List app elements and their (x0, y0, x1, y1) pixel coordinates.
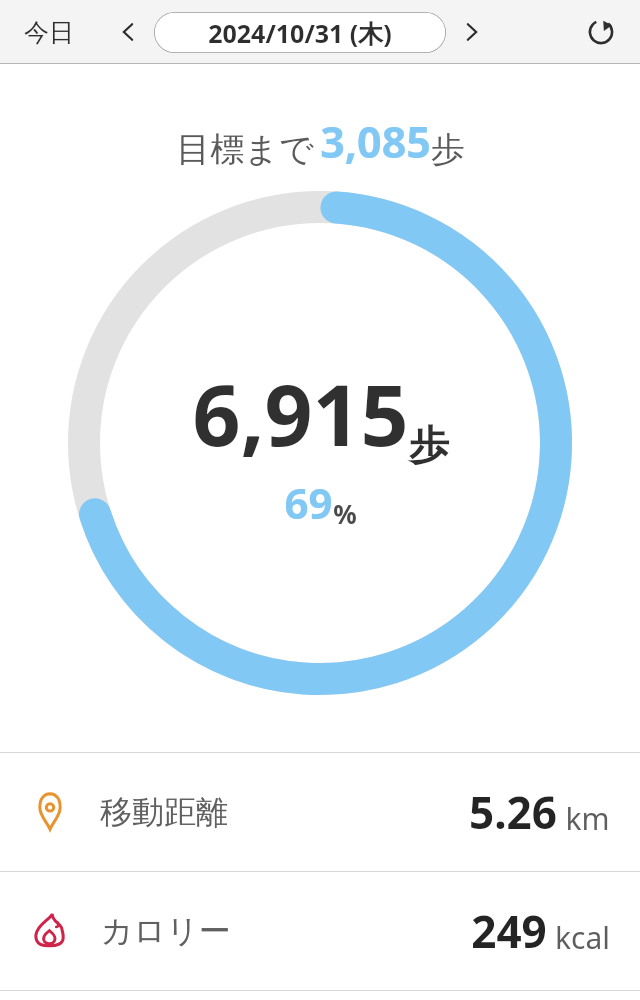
button[interactable]: Next day (450, 10, 494, 54)
staticText: 目標まで (176, 128, 314, 171)
button[interactable]: 今日 (14, 11, 84, 54)
staticText: 69 (284, 474, 333, 531)
button[interactable]: Previous day (106, 10, 150, 54)
button[interactable]: 2024/10/31 (木) (154, 12, 446, 53)
button[interactable]: Calories (0, 872, 640, 990)
staticText: 歩 (431, 128, 465, 171)
staticText: kcal (555, 917, 610, 958)
staticText: 歩 (409, 420, 449, 470)
button[interactable]: Refresh (578, 9, 624, 55)
staticText: カロリー (100, 911, 231, 951)
staticText: 2024/10/31 (木) (208, 16, 392, 50)
staticText: 5.26 (469, 782, 557, 842)
staticText: 今日 (24, 17, 74, 48)
staticText: 移動距離 (100, 792, 228, 832)
staticText: 249 (471, 901, 547, 961)
staticText: km (565, 798, 610, 839)
staticText: % (333, 496, 357, 531)
staticText: 6,915 (192, 356, 409, 470)
button[interactable]: Distance (0, 753, 640, 871)
staticText: 3,085 (320, 112, 431, 171)
